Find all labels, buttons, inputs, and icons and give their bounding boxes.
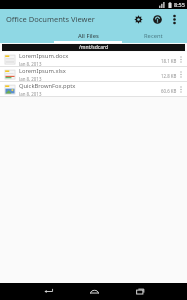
staticText: Office Documents Viewer [6,14,130,24]
staticText: Recent [144,32,163,40]
staticText: Jan 8, 2013 [19,91,42,96]
button[interactable]: File options [177,52,185,66]
staticText: 18.1 KB [161,58,177,64]
button[interactable]: Home [77,283,111,300]
button[interactable]: Recent [122,29,185,43]
button[interactable]: More options [167,12,181,26]
button[interactable]: File options [177,82,185,96]
button[interactable]: File options [177,67,185,81]
button[interactable]: QuickBrownFox.pptx [0,82,187,96]
staticText: Jan 8, 2013 [19,61,42,66]
button[interactable]: Help [149,11,165,27]
staticText: 60.6 KB [161,88,177,94]
staticText: All Files [78,32,99,40]
staticText: QuickBrownFox.pptx [19,82,76,90]
staticText: /mnt/sdcard [79,44,109,51]
button[interactable]: Back [31,283,65,300]
button[interactable]: LoremIpsum.xlsx [0,67,187,81]
staticText: 8:55 [174,1,185,8]
staticText: LoremIpsum.xlsx [19,67,66,75]
button[interactable]: Settings [130,11,146,27]
staticText: Jan 8, 2013 [19,76,42,81]
button[interactable]: Recent apps [123,283,157,300]
staticText: LoremIpsum.docx [19,52,69,60]
button[interactable]: All Files [54,29,122,43]
staticText: 12.8 KB [161,73,177,79]
button[interactable]: LoremIpsum.docx [0,52,187,66]
button[interactable]: /mnt/sdcard [2,44,185,51]
